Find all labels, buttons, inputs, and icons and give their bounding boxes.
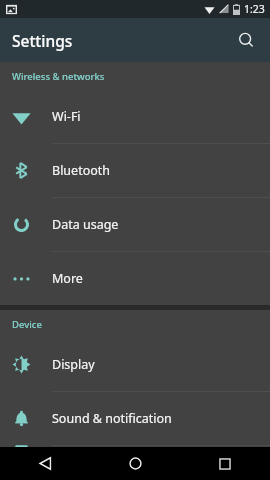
staticText: Data usage — [52, 216, 119, 233]
button[interactable]: Display — [0, 338, 270, 391]
staticText: 1:23 — [244, 2, 265, 16]
staticText: Device — [12, 318, 42, 331]
staticText: Bluetooth — [52, 162, 111, 179]
staticText: Settings — [12, 30, 73, 51]
button[interactable]: Back — [0, 447, 90, 480]
staticText: Wi-Fi — [52, 108, 81, 125]
button[interactable]: Search — [228, 22, 264, 58]
button[interactable]: Recent apps — [180, 447, 270, 480]
button[interactable]: Wi-Fi — [0, 90, 270, 143]
staticText: Wireless & networks — [12, 70, 105, 83]
staticText: More — [52, 270, 83, 287]
button[interactable]: Apps — [0, 446, 270, 447]
button[interactable]: Bluetooth — [0, 144, 270, 197]
staticText: Sound & notification — [52, 410, 172, 427]
button[interactable]: Sound & notification — [0, 392, 270, 445]
staticText: Display — [52, 356, 95, 373]
button[interactable]: Home — [90, 447, 180, 480]
button[interactable]: Data usage — [0, 198, 270, 251]
button[interactable]: More — [0, 252, 270, 305]
